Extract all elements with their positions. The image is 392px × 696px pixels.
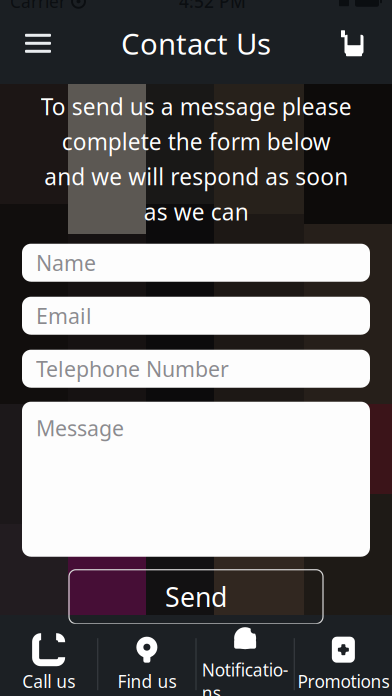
button[interactable]: Call us — [0, 624, 97, 696]
staticText: Send — [165, 579, 227, 614]
staticText: 4:52 PM — [179, 0, 246, 13]
button[interactable]: Send — [69, 570, 323, 624]
button[interactable]: Promotions — [295, 624, 392, 696]
staticText: Name — [36, 248, 96, 277]
button[interactable]: Name — [22, 244, 370, 282]
staticText: To send us a message please complete the… — [40, 91, 351, 227]
staticText: Contact Us — [121, 24, 271, 63]
button[interactable]: Home — [328, 21, 380, 65]
button[interactable]: Message — [22, 402, 370, 557]
button[interactable]: Find us — [98, 624, 195, 696]
button[interactable]: Telephone Number — [22, 350, 370, 388]
staticText: Email — [36, 301, 92, 330]
staticText: Promotions — [297, 670, 389, 693]
staticText: Call us — [22, 670, 75, 693]
staticText: Telephone Number — [36, 354, 229, 383]
staticText: Carrier — [10, 0, 66, 13]
button[interactable]: Menu — [12, 21, 64, 65]
staticText: Find us — [117, 670, 176, 693]
staticText: Notifications — [202, 658, 289, 696]
staticText: Message — [36, 414, 124, 442]
button[interactable]: Email — [22, 297, 370, 335]
button[interactable]: Notifications — [196, 624, 294, 696]
